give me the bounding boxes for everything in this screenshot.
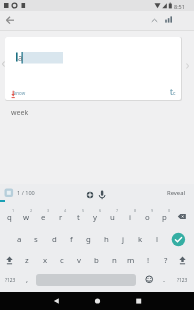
staticText: w [23,212,30,223]
staticText: 5 [82,208,85,213]
staticText: i [129,212,132,223]
staticText: m [127,255,135,266]
button[interactable] [176,253,190,268]
staticText: x [43,255,48,266]
staticText: 2 [30,208,33,213]
staticText: p [162,212,167,223]
staticText: week [11,108,29,118]
button[interactable]: u [98,209,126,225]
staticText: l [156,234,159,245]
button[interactable]: a [5,231,33,247]
staticText: 8 [134,208,137,213]
button[interactable] [2,12,19,29]
button[interactable] [174,209,190,224]
button[interactable]: h [92,231,120,247]
staticText: q [7,212,12,223]
staticText: 3 [47,208,50,213]
staticText: g [86,234,91,245]
button[interactable]: x [31,252,59,268]
button[interactable] [148,13,161,27]
button[interactable]: y [81,209,109,225]
staticText: 1 / 100 [17,189,35,197]
staticText: 1 [12,208,15,213]
button[interactable]: w [12,209,40,225]
staticText: z [25,255,29,266]
staticText: a [18,52,23,63]
staticText: . [163,274,166,284]
button[interactable]: ?123 [168,272,194,288]
staticText: know [14,90,26,96]
staticText: 8:51 [174,3,185,10]
staticText: e [41,212,46,223]
staticText: 9 [151,208,154,213]
button[interactable] [2,186,46,199]
button[interactable]: e [29,209,57,225]
staticText: ?123 [5,277,16,284]
staticText: t [170,86,173,97]
staticText: c [173,90,176,97]
button[interactable]: Reveal [162,185,190,201]
button[interactable] [3,253,17,268]
staticText: j [122,234,125,245]
button[interactable]: n [100,252,128,268]
staticText: 4 [64,208,67,213]
button[interactable]: ? [152,252,180,268]
button[interactable]: o [133,209,161,225]
button[interactable] [84,189,96,201]
button[interactable] [47,293,66,309]
button[interactable]: v [65,252,93,268]
button[interactable] [96,188,108,201]
button[interactable]: c [48,252,76,268]
staticText: d [52,234,57,245]
staticText: ! [147,255,150,266]
button[interactable]: , [13,271,41,287]
button[interactable] [143,273,156,286]
button[interactable]: ! [134,252,162,268]
staticText: v [77,255,81,266]
staticText: 6 [99,208,102,213]
staticText: s [34,234,38,245]
button[interactable]: t [64,209,92,225]
staticText: Reveal [167,189,186,197]
button[interactable]: j [109,231,137,247]
staticText: 7 [116,208,119,213]
staticText: b [94,255,99,266]
button[interactable] [162,13,176,27]
button[interactable]: k [126,231,154,247]
staticText: f [70,234,73,245]
staticText: r [59,212,63,223]
button[interactable]: r [47,209,75,225]
staticText: a [17,234,22,245]
button[interactable]: l [143,231,171,247]
button[interactable] [5,37,181,100]
staticText: , [26,274,29,284]
button[interactable]: ?123 [0,272,24,288]
staticText: u [110,212,115,223]
staticText: t [77,212,80,223]
button[interactable]: m [117,252,145,268]
button[interactable] [170,231,187,248]
staticText: 0 [168,208,171,213]
staticText: h [104,234,109,245]
button[interactable]: b [82,252,110,268]
button[interactable]: g [74,231,102,247]
button[interactable]: p [150,209,178,225]
staticText: ?123 [177,277,188,284]
staticText: y [93,212,97,223]
button[interactable]: . [150,271,178,287]
button[interactable]: i [116,209,144,225]
staticText: o [145,212,150,223]
button[interactable]: q [0,209,23,225]
button[interactable]: s [22,231,50,247]
staticText: k [138,234,143,245]
staticText: n [112,255,117,266]
button[interactable]: z [13,252,41,268]
button[interactable] [129,293,148,309]
button[interactable] [88,293,107,309]
button[interactable]: d [40,231,68,247]
staticText: ? [164,255,168,266]
staticText: c [60,255,64,266]
button[interactable]: f [57,231,85,247]
